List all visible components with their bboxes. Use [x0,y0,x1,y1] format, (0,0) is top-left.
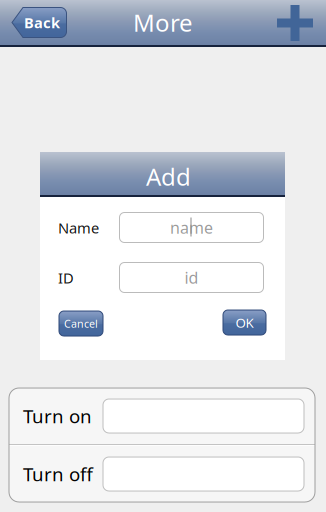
staticText: Cancel [64,316,98,331]
staticText: Name [58,218,99,237]
button[interactable]: Turn off [9,446,315,502]
button[interactable]: Cancel [59,311,103,336]
staticText: More [133,7,193,38]
button[interactable]: Turn on [9,388,315,444]
staticText: ID [58,268,74,287]
staticText: Back [24,13,60,32]
button[interactable]: Add [277,5,313,41]
staticText: id [184,267,198,288]
staticText: OK [235,314,253,331]
button[interactable]: OK [223,310,266,335]
button[interactable]: Back [11,7,67,38]
staticText: name [170,217,213,238]
staticText: Turn off [23,462,93,486]
staticText: Add [146,161,191,192]
staticText: Turn on [23,404,92,428]
